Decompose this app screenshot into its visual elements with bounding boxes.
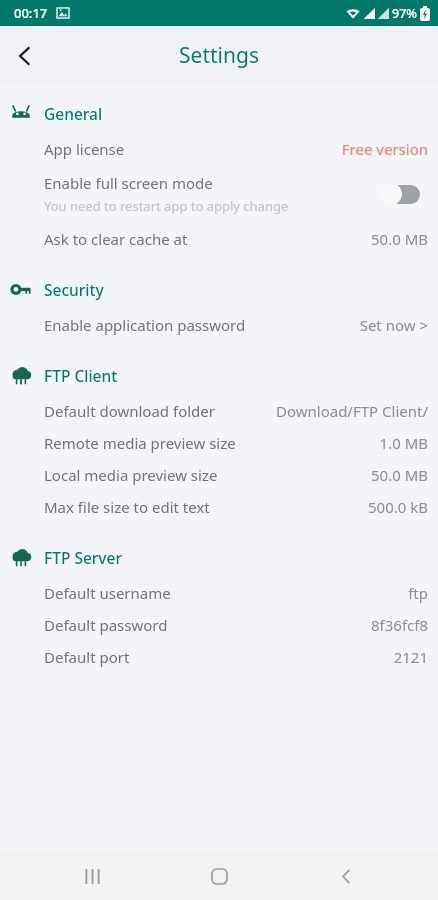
staticText: General	[44, 103, 103, 124]
button[interactable]: Remote media preview size	[0, 427, 438, 459]
button[interactable]: Enable full screen mode	[0, 165, 438, 223]
button[interactable]: Default port	[0, 641, 438, 673]
staticText: 97%	[392, 5, 417, 22]
button[interactable]: FTP Server	[0, 543, 438, 571]
staticText: Ask to clear cache at	[44, 229, 370, 249]
staticText: 50.0 MB	[370, 465, 428, 485]
button[interactable]: General	[0, 99, 438, 127]
staticText: 1.0 MB	[379, 433, 428, 453]
button[interactable]: Enable full screen mode toggle	[380, 182, 424, 206]
staticText: Enable application password	[44, 315, 359, 335]
button[interactable]: Security	[0, 275, 438, 303]
staticText: 500.0 kB	[367, 497, 428, 517]
staticText: FTP Server	[44, 547, 122, 568]
staticText: Default password	[44, 615, 370, 635]
staticText: Default port	[44, 647, 393, 667]
staticText: App license	[44, 139, 341, 159]
staticText: Default username	[44, 583, 408, 603]
staticText: Download/FTP Client/	[276, 401, 428, 421]
button[interactable]: Local media preview size	[0, 459, 438, 491]
staticText: FTP Client	[44, 365, 118, 386]
button[interactable]: Default password	[0, 609, 438, 641]
button[interactable]: Default username	[0, 577, 438, 609]
staticText: Local media preview size	[44, 465, 370, 485]
staticText: 8f36fcf8	[370, 615, 428, 635]
button[interactable]: Back	[0, 31, 50, 81]
staticText: Remote media preview size	[44, 433, 379, 453]
staticText: Enable full screen mode	[44, 173, 213, 193]
staticText: Default download folder	[44, 401, 276, 421]
button[interactable]: Enable application password	[0, 309, 438, 341]
button[interactable]: Default download folder	[0, 395, 438, 427]
button[interactable]: FTP Client	[0, 361, 438, 389]
staticText: Security	[44, 279, 104, 300]
button[interactable]: Max file size to edit text	[0, 491, 438, 523]
staticText: ftp	[408, 583, 428, 603]
staticText: 2121	[393, 647, 428, 667]
staticText: You need to restart app to apply change	[44, 197, 289, 215]
staticText: 50.0 MB	[370, 229, 428, 249]
button[interactable]: Back	[311, 852, 381, 900]
staticText: Set now >	[359, 315, 428, 335]
staticText: 00:17	[14, 4, 48, 22]
button[interactable]: Home	[184, 852, 254, 900]
button[interactable]: Recents	[57, 852, 127, 900]
staticText: Free version	[341, 139, 428, 159]
staticText: Max file size to edit text	[44, 497, 367, 517]
button[interactable]: Ask to clear cache at	[0, 223, 438, 255]
staticText: Settings	[179, 41, 259, 70]
button[interactable]: App license	[0, 133, 438, 165]
